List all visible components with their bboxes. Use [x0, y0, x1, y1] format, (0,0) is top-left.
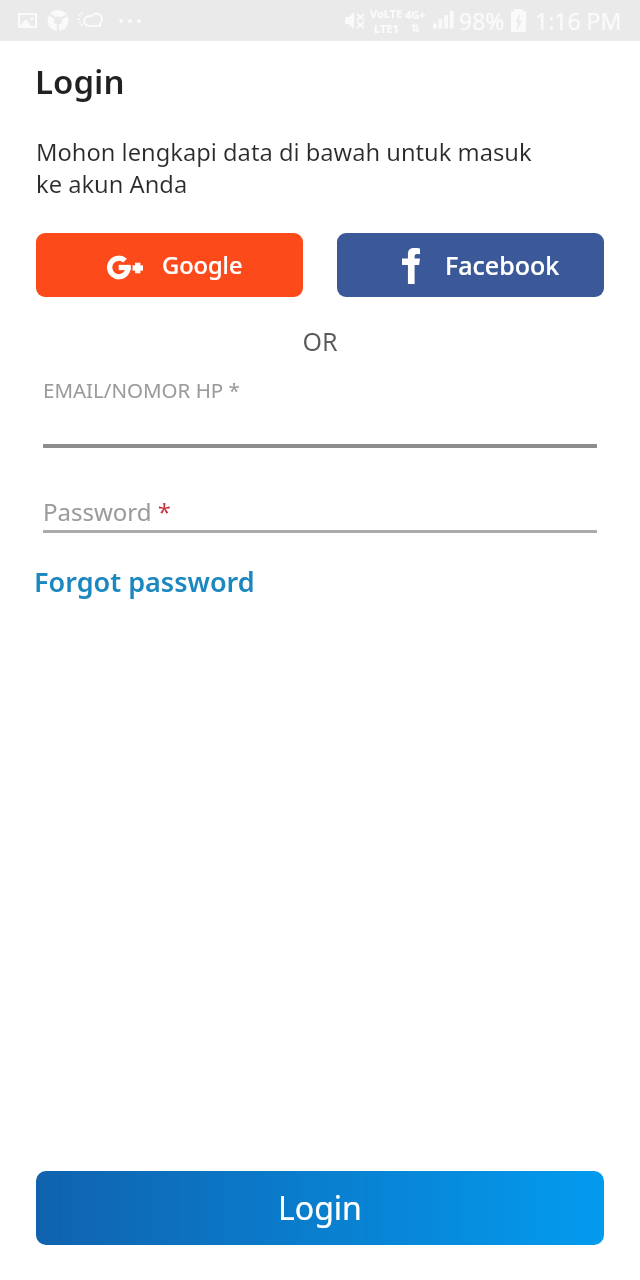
staticText: OR — [0, 324, 640, 358]
other: Battery charging, 98 percent — [511, 9, 526, 32]
staticText: ⇅ — [411, 22, 421, 35]
staticText: 4G+ — [405, 7, 426, 22]
staticText: Mohon lengkapi data di bawah untuk masuk… — [36, 136, 532, 200]
staticText: 1:16 PM — [535, 5, 622, 36]
button[interactable]: Forgot password — [34, 563, 255, 600]
button[interactable]: Facebook — [337, 233, 604, 297]
staticText: VoLTE — [370, 6, 403, 21]
staticText: 98% — [459, 5, 505, 36]
button[interactable]: Google — [36, 233, 303, 297]
staticText: Login — [35, 59, 125, 104]
staticText: Facebook — [445, 248, 560, 282]
staticText: Google — [162, 249, 243, 281]
staticText: Forgot password — [34, 563, 255, 600]
button[interactable]: Login — [36, 1171, 604, 1245]
staticText: Login — [278, 1186, 362, 1230]
staticText: LTE1 — [374, 21, 399, 36]
staticText: Password * — [43, 495, 172, 528]
button[interactable]: EMAIL/NOMOR HP * — [0, 376, 640, 448]
staticText: EMAIL/NOMOR HP * — [43, 376, 240, 404]
button[interactable]: Password * — [0, 495, 640, 533]
